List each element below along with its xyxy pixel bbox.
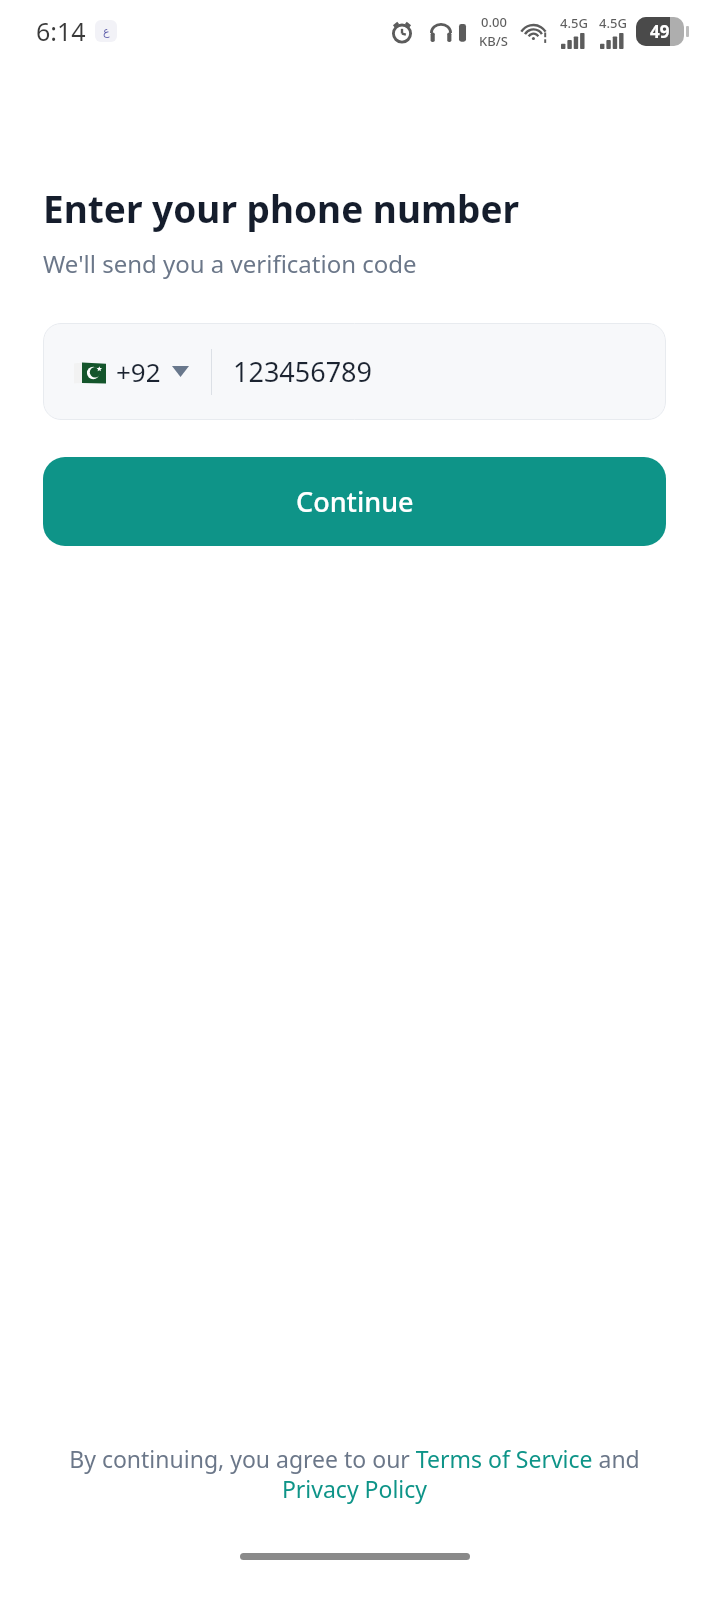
button[interactable]: 123456789 (212, 331, 666, 412)
staticText: 123456789 (233, 353, 372, 390)
staticText: Enter your phone number (43, 183, 520, 233)
staticText: By continuing, you agree to our Terms of… (40, 1443, 669, 1505)
staticText: 49 (650, 20, 670, 43)
staticText: +92 (116, 354, 161, 389)
staticText: 4.5G (560, 14, 588, 32)
staticText: 6:14 (36, 14, 86, 48)
staticText: Continue (296, 483, 414, 520)
staticText: ع (103, 25, 110, 38)
staticText: 0.00 (481, 13, 507, 31)
staticText: We'll send you a verification code (43, 247, 417, 280)
button[interactable]: By continuing, you agree to our Terms of… (40, 1443, 669, 1505)
staticText: 4.5G (599, 14, 627, 32)
button[interactable]: Select country code (43, 336, 211, 407)
staticText: KB/S (479, 32, 508, 50)
button[interactable]: Continue (43, 457, 666, 546)
